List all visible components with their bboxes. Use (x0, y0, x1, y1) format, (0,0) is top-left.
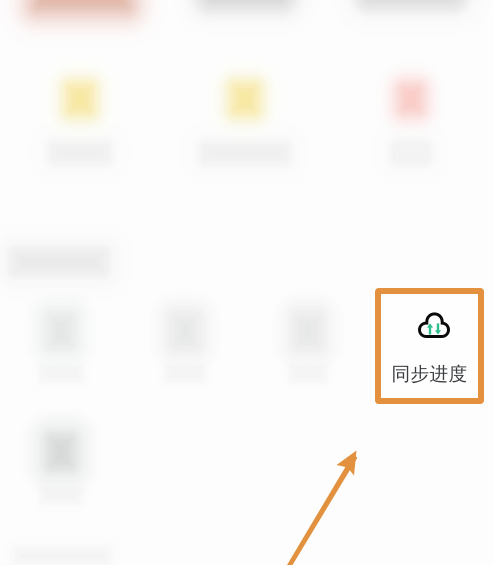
staticText: 同步进度 (391, 362, 467, 385)
button[interactable]: 同步进度 (375, 288, 484, 404)
